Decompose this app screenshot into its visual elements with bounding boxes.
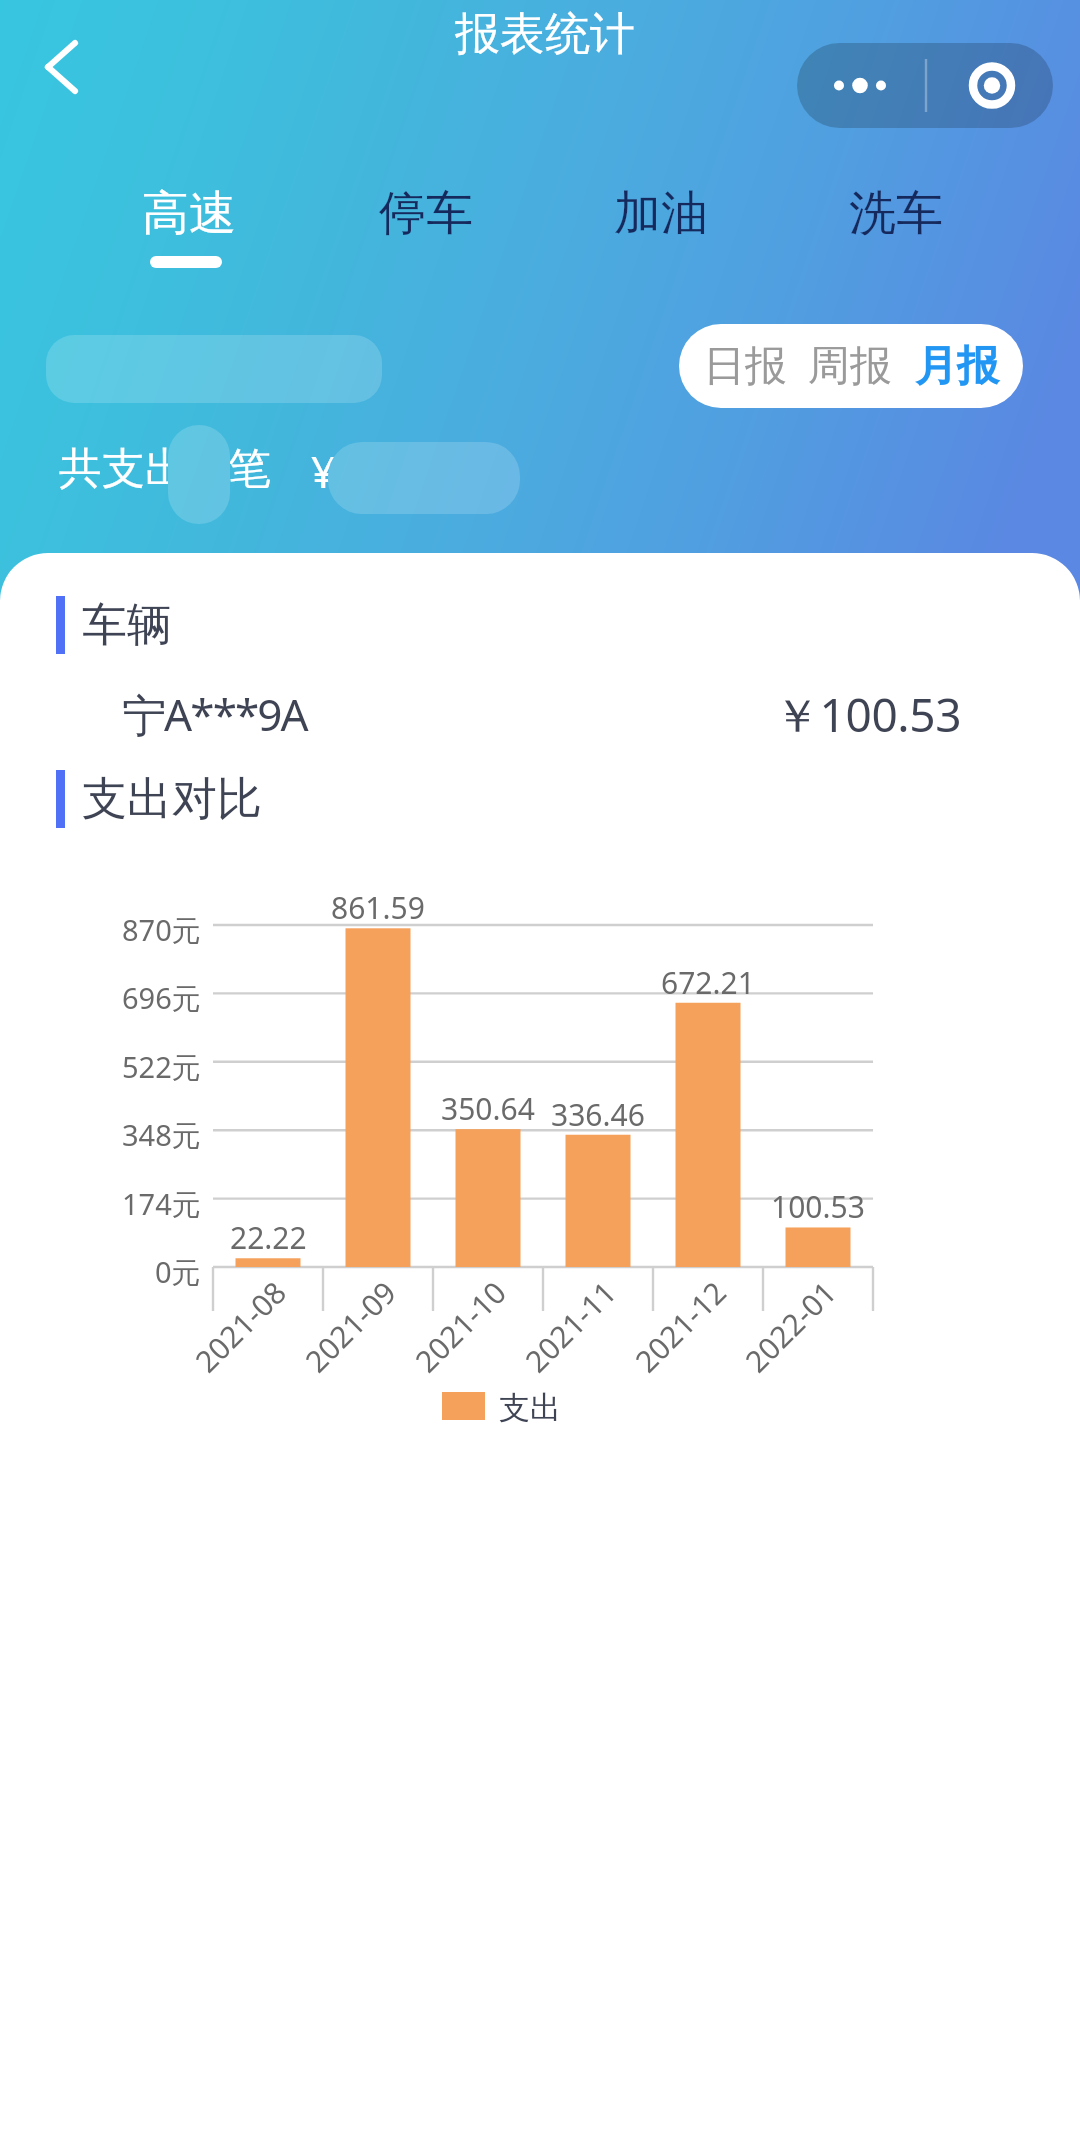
staticText: 车辆 xyxy=(82,597,172,654)
staticText: 日报 xyxy=(703,340,787,393)
staticText: 22.22 xyxy=(230,1217,307,1258)
staticText: 100.53 xyxy=(771,1186,865,1227)
staticText: 522元 xyxy=(122,1047,201,1087)
staticText: 支出 xyxy=(499,1388,561,1424)
staticText: 加油 xyxy=(614,184,708,243)
button[interactable]: More options xyxy=(797,43,1053,128)
button[interactable]: 高速 xyxy=(89,184,289,284)
staticText: 2022-01 xyxy=(736,1272,845,1381)
staticText: 2021-11 xyxy=(516,1272,625,1381)
staticText: 2021-09 xyxy=(296,1272,405,1381)
staticText: 洗车 xyxy=(849,184,943,243)
button[interactable]: 宁A***9A xyxy=(122,674,962,754)
button[interactable]: 支出对比 xyxy=(56,770,262,828)
staticText: 0元 xyxy=(155,1252,201,1292)
staticText: 宁A***9A xyxy=(122,684,307,744)
staticText: 350.64 xyxy=(441,1088,535,1129)
button[interactable]: Back xyxy=(18,31,90,103)
staticText: 支出对比 xyxy=(82,771,262,828)
staticText: 高速 xyxy=(142,184,236,243)
staticText: 870元 xyxy=(122,910,201,950)
staticText: 174元 xyxy=(122,1184,201,1224)
staticText: 696元 xyxy=(122,978,201,1018)
staticText: 336.46 xyxy=(551,1094,645,1135)
staticText: 笔 xyxy=(228,442,271,496)
button[interactable]: 车辆 xyxy=(56,596,172,654)
staticText: 2021-12 xyxy=(626,1272,735,1381)
staticText: 348元 xyxy=(122,1115,201,1155)
staticText: 2021-10 xyxy=(406,1272,515,1381)
staticText: 周报 xyxy=(808,340,892,393)
staticText: ¥ xyxy=(311,442,336,501)
staticText: 报表统计 xyxy=(455,6,635,63)
button[interactable]: 加油 xyxy=(561,184,761,284)
button[interactable]: 支出 xyxy=(442,1388,561,1424)
staticText: 月报 xyxy=(915,340,999,393)
staticText: 861.59 xyxy=(331,887,425,928)
button[interactable]: 洗车 xyxy=(796,184,996,284)
staticText: 672.21 xyxy=(661,962,755,1003)
button[interactable]: 日报 xyxy=(693,324,797,408)
button[interactable]: 月报 xyxy=(905,324,1009,408)
staticText: ￥100.53 xyxy=(774,683,962,746)
staticText: 2021-08 xyxy=(186,1272,295,1381)
staticText: 共支出 xyxy=(59,442,188,496)
button[interactable]: 停车 xyxy=(326,184,526,284)
staticText: 停车 xyxy=(379,184,473,243)
button[interactable]: 周报 xyxy=(798,324,902,408)
